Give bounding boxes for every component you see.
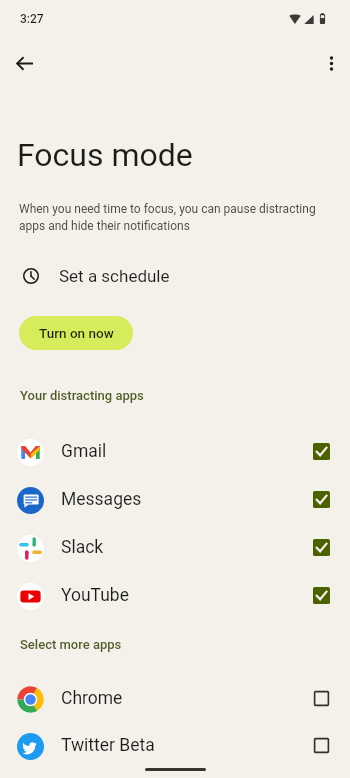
staticText: Messages (61, 489, 142, 510)
staticText: Turn on now (39, 325, 114, 341)
staticText: Chrome (61, 688, 123, 709)
staticText: 3:27 (20, 12, 44, 26)
staticText: YouTube (61, 585, 129, 606)
button[interactable]: Slack (0, 525, 350, 571)
button[interactable]: Turn on now (19, 316, 133, 350)
button[interactable]: YouTube (0, 573, 350, 619)
staticText: Twitter Beta (61, 735, 155, 756)
button[interactable]: Messages (0, 477, 350, 523)
button[interactable]: More options (311, 43, 350, 83)
staticText: When you need time to focus, you can pau… (19, 202, 334, 233)
staticText: Gmail (61, 441, 107, 462)
button[interactable]: Twitter Beta (0, 723, 350, 769)
staticText: Your distracting apps (20, 388, 144, 403)
staticText: Set a schedule (59, 266, 170, 286)
button[interactable]: Set a schedule (0, 260, 350, 292)
button[interactable]: Chrome (0, 676, 350, 722)
button[interactable]: Back (4, 43, 44, 83)
staticText: Select more apps (20, 637, 122, 652)
button[interactable]: Gmail (0, 429, 350, 475)
staticText: Slack (61, 537, 104, 558)
staticText: Focus mode (17, 136, 193, 174)
